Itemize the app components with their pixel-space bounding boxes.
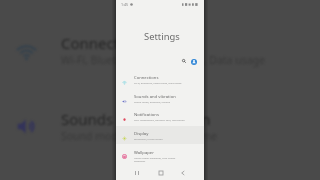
button[interactable]: Sounds and vibration xyxy=(116,91,204,109)
staticText: Brightness, Home screen xyxy=(134,137,163,140)
button[interactable]: Display xyxy=(116,128,204,146)
staticText: Sound mode, Ringtone, Volume xyxy=(134,100,171,103)
button[interactable]: Connections xyxy=(116,72,204,90)
button[interactable]: Back xyxy=(178,168,187,177)
button[interactable]: Home xyxy=(156,168,165,177)
button[interactable]: Search xyxy=(179,56,189,66)
staticText: Home screen wallpaper, Lock screen wallp… xyxy=(134,156,176,162)
staticText: Connections xyxy=(134,75,159,81)
staticText: Wi-Fi, Bluetooth, Flight mode, Data usag… xyxy=(61,53,266,67)
button[interactable]: Wallpaper xyxy=(116,146,204,168)
button[interactable]: Account xyxy=(191,59,197,65)
staticText: Display xyxy=(134,131,149,137)
staticText: Sounds and vibration xyxy=(134,94,176,100)
staticText: Notifications xyxy=(134,112,159,118)
staticText: Sound mode, Ringtone, Volume xyxy=(61,129,218,143)
staticText: Sync notifications, Recently sent, Tab p… xyxy=(134,118,185,121)
staticText: 1:45 xyxy=(121,2,129,7)
button[interactable]: Recents xyxy=(132,168,141,177)
staticText: Sounds and vibration xyxy=(61,109,211,129)
button[interactable]: Notifications xyxy=(116,109,204,127)
staticText: Wallpaper xyxy=(134,150,154,156)
staticText: Settings xyxy=(144,30,180,43)
staticText: Wi-Fi, Bluetooth, Flight mode, Data usag… xyxy=(134,81,182,84)
staticText: Connections xyxy=(61,33,149,53)
